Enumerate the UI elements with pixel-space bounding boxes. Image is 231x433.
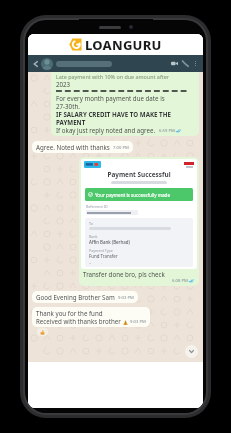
staticText: Good Evening Brother Sam <box>36 293 115 301</box>
staticText: Amount <box>89 262 103 264</box>
staticText: Thank you for the fund <box>36 309 103 317</box>
button[interactable]: Agree. Noted with thanks <box>32 141 133 153</box>
staticText: Payment Successful <box>81 170 197 179</box>
staticText: 2023 <box>56 80 71 88</box>
staticText: 6:08 PM <box>172 278 188 284</box>
staticText: Payment Type <box>89 248 113 253</box>
staticText: Affin Bank (Berhad) <box>89 239 130 245</box>
button[interactable] <box>41 58 53 70</box>
staticText: To <box>89 221 93 226</box>
staticText: 6:59 PM <box>159 128 175 134</box>
staticText: Fund Transfer <box>89 253 118 259</box>
button[interactable]: Payment Successful <box>79 157 199 286</box>
staticText: 9:03 PM <box>130 319 146 325</box>
staticText: For every month payment due date is <box>56 94 165 102</box>
button[interactable]: Scroll to bottom <box>185 345 198 358</box>
staticText: 27-30th. <box>56 102 80 110</box>
button[interactable]: Voice call <box>180 58 191 69</box>
button[interactable]: Back <box>31 59 41 69</box>
button[interactable]: Thank you for the fund <box>32 307 150 327</box>
staticText: Late payment with 10% on due amount afte… <box>56 73 169 80</box>
staticText: Received with thanks brother <box>36 317 121 325</box>
staticText: Agree. Noted with thanks <box>36 143 110 151</box>
staticText: 9:03 PM <box>118 295 134 301</box>
staticText: If okay just reply noted and agree. <box>56 126 156 134</box>
staticText: LOANGURU <box>85 36 162 54</box>
staticText: IF SALARY CREDIT HAVE TO MAKE THE <box>56 110 171 118</box>
button[interactable]: Video call <box>169 58 180 69</box>
button[interactable]: More options <box>191 59 200 68</box>
button[interactable]: Good Evening Brother Sam <box>32 291 138 303</box>
staticText: Bank <box>89 234 98 239</box>
staticText: Reference ID <box>86 204 108 209</box>
staticText: PAYMENT <box>56 118 86 126</box>
staticText: Your payment is successfully made <box>95 192 171 198</box>
button[interactable]: Thumbs up reaction <box>37 328 48 336</box>
button[interactable]: Late payment with 10% on due amount afte… <box>51 72 199 136</box>
staticText: Transfer done bro, pls check <box>83 270 165 278</box>
button[interactable] <box>56 61 112 67</box>
button[interactable]: LOANGURU <box>28 34 203 55</box>
staticText: 7:00 PM <box>113 145 129 151</box>
